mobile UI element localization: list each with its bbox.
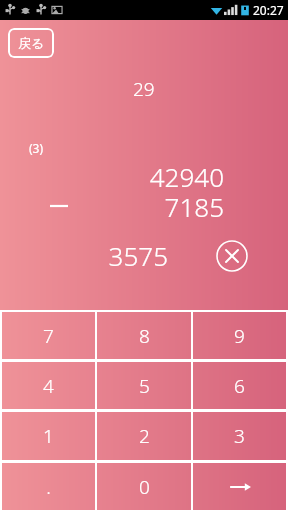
button[interactable]: 9 [193, 312, 286, 359]
staticText: 7185 [164, 189, 224, 224]
staticText: 0 [139, 474, 150, 500]
staticText: (3) [29, 140, 44, 156]
button[interactable]: 6 [193, 362, 286, 409]
button[interactable]: Enter [193, 463, 286, 510]
staticText: 戻る [18, 35, 45, 51]
button[interactable]: 3 [193, 412, 286, 460]
button[interactable]: 戻る [8, 28, 54, 58]
staticText: 29 [133, 76, 155, 102]
button[interactable]: 0 [97, 463, 191, 510]
staticText: 7 [43, 323, 54, 349]
button[interactable]: . [2, 463, 95, 510]
staticText: 1 [43, 423, 54, 449]
staticText: 3575 [108, 238, 168, 273]
staticText: 20:27 [253, 2, 284, 18]
staticText: 2 [139, 423, 150, 449]
staticText: 5 [139, 373, 150, 399]
staticText: 9 [234, 323, 245, 349]
button[interactable]: 4 [2, 362, 95, 409]
staticText: 3 [234, 423, 245, 449]
button[interactable]: 2 [97, 412, 191, 460]
staticText: 8 [139, 323, 150, 349]
button[interactable]: 8 [97, 312, 191, 359]
button[interactable]: 7 [2, 312, 95, 359]
staticText: . [46, 474, 51, 500]
button[interactable]: 1 [2, 412, 95, 460]
staticText: 6 [234, 373, 245, 399]
staticText: 4 [43, 373, 54, 399]
button[interactable]: Clear [214, 238, 250, 274]
staticText: 42940 [149, 159, 224, 194]
button[interactable]: 5 [97, 362, 191, 409]
